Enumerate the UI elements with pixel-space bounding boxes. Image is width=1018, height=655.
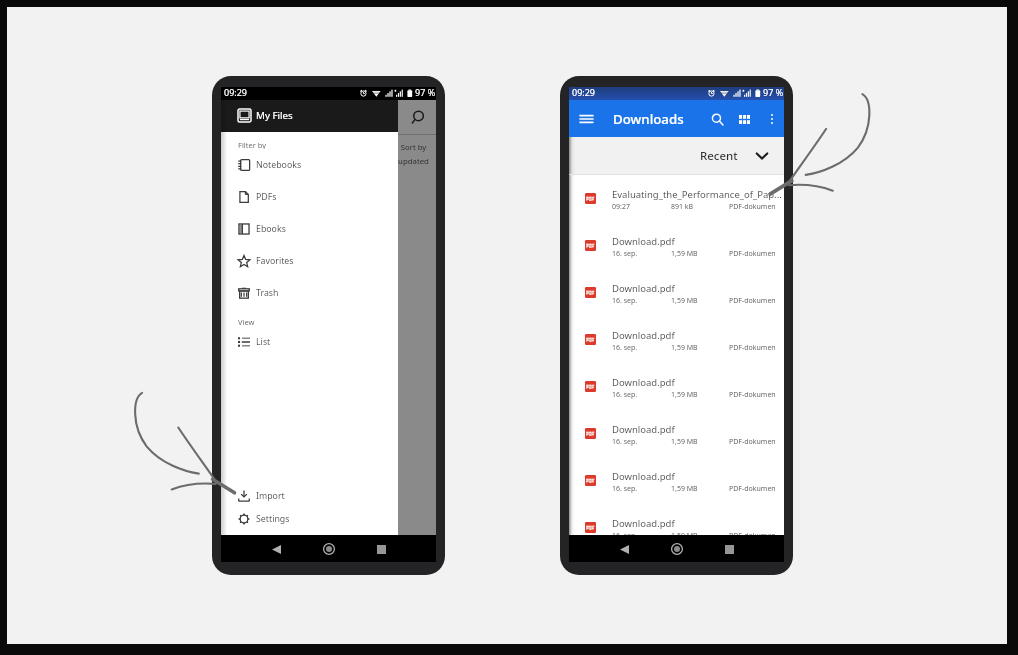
staticText: Download.pdf [612, 376, 675, 389]
staticText: PDF-dokumen [729, 531, 776, 535]
button[interactable]: More options [762, 109, 781, 128]
staticText: 16. sep. [612, 249, 638, 259]
staticText: Download.pdf [612, 423, 675, 436]
button[interactable]: Notebooks [221, 149, 398, 181]
staticText: Download.pdf [612, 329, 675, 342]
button[interactable]: Ebooks [221, 213, 398, 245]
staticText: Download.pdf [612, 470, 675, 483]
button[interactable]: Home [316, 536, 342, 562]
button[interactable]: Settings [221, 507, 398, 530]
staticText: Trash [256, 287, 279, 299]
button[interactable]: Favorites [221, 245, 398, 277]
staticText: Filter by [238, 140, 267, 149]
staticText: 1,59 MB [671, 531, 698, 535]
button[interactable]: Download.pdf [569, 363, 784, 410]
button[interactable]: Evaluating_the_Performance_of_Pap... [569, 175, 784, 222]
staticText: 97 % [763, 86, 784, 98]
staticText: List [256, 336, 271, 348]
staticText: 16. sep. [612, 437, 638, 447]
staticText: Favorites [256, 255, 294, 267]
staticText: 16. sep. [612, 390, 638, 400]
button[interactable]: Download.pdf [569, 316, 784, 363]
button[interactable]: Download.pdf [569, 269, 784, 316]
staticText: 16. sep. [612, 343, 638, 353]
staticText: 16. sep. [612, 484, 638, 494]
staticText: Evaluating_the_Performance_of_Pap... [612, 188, 782, 201]
button[interactable]: Trash [221, 277, 398, 309]
staticText: 1,59 MB [671, 437, 698, 447]
staticText: PDF-dokumen [729, 390, 776, 400]
staticText: Sort by [394, 142, 433, 153]
staticText: PDF-dokumen [729, 202, 776, 212]
button[interactable]: PDFs [221, 181, 398, 213]
staticText: Recent [700, 148, 738, 164]
staticText: PDFs [256, 191, 277, 203]
staticText: 1,59 MB [671, 296, 698, 306]
staticText: Download.pdf [612, 235, 675, 248]
staticText: Notebooks [256, 159, 302, 171]
staticText: 09:27 [612, 202, 630, 212]
button[interactable]: Search [397, 100, 436, 134]
button[interactable]: Recent apps [716, 536, 742, 562]
button[interactable]: Grid view [734, 109, 754, 129]
button[interactable]: Search [707, 109, 727, 129]
button[interactable]: List [221, 326, 398, 358]
staticText: Import [256, 490, 285, 502]
staticText: View [238, 317, 255, 326]
button[interactable]: Download.pdf [569, 504, 784, 535]
staticText: 1,59 MB [671, 484, 698, 494]
staticText: Download.pdf [612, 517, 675, 530]
staticText: 09:29 [224, 86, 248, 98]
button[interactable]: Home [664, 536, 690, 562]
staticText: Download.pdf [612, 282, 675, 295]
staticText: 97 % [415, 86, 436, 98]
button[interactable]: My Files [221, 100, 398, 132]
staticText: PDF-dokumen [729, 343, 776, 353]
staticText: 891 kB [671, 202, 694, 212]
button[interactable]: Recent apps [368, 536, 394, 562]
staticText: 1,59 MB [671, 390, 698, 400]
staticText: Downloads [613, 110, 684, 128]
staticText: 09:29 [572, 86, 596, 98]
staticText: updated [394, 156, 433, 167]
staticText: 16. sep. [612, 531, 638, 535]
staticText: Settings [256, 513, 290, 525]
staticText: 16. sep. [612, 296, 638, 306]
button[interactable]: Back [611, 536, 637, 562]
button[interactable]: Import [221, 484, 398, 507]
button[interactable]: Recent [569, 137, 784, 174]
staticText: Ebooks [256, 223, 286, 235]
staticText: My Files [256, 109, 293, 122]
staticText: PDF-dokumen [729, 249, 776, 259]
staticText: PDF-dokumen [729, 296, 776, 306]
button[interactable]: Download.pdf [569, 457, 784, 504]
button[interactable]: Download.pdf [569, 410, 784, 457]
button[interactable]: Back [263, 536, 289, 562]
button[interactable]: Open navigation drawer [577, 109, 596, 128]
staticText: PDF-dokumen [729, 437, 776, 447]
staticText: 1,59 MB [671, 343, 698, 353]
button[interactable]: Download.pdf [569, 222, 784, 269]
staticText: 1,59 MB [671, 249, 698, 259]
staticText: PDF-dokumen [729, 484, 776, 494]
